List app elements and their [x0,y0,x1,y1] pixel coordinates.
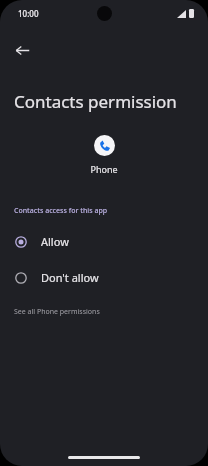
button[interactable]: Don't allow [0,266,208,289]
staticText: Don't allow [41,270,99,285]
staticText: Contacts permission [14,90,177,113]
staticText: See all Phone permissions [14,307,100,317]
button[interactable]: See all Phone permissions [0,305,208,319]
staticText: 10:00 [18,8,39,19]
staticText: Allow [41,234,69,249]
button[interactable]: Allow [0,230,208,253]
button[interactable]: Back [4,32,40,68]
staticText: Contacts access for this app [14,206,108,216]
staticText: Phone [90,163,118,175]
